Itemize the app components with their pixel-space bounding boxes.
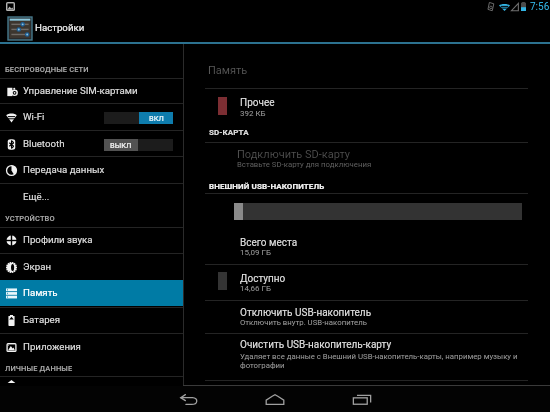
- button[interactable]: Прочее: [184, 90, 550, 117]
- button[interactable]: Память: [0, 280, 183, 306]
- staticText: Память: [208, 64, 248, 77]
- button[interactable]: Recent apps: [333, 386, 390, 412]
- staticText: 7:56: [530, 1, 550, 13]
- button[interactable]: Батарея: [0, 307, 183, 333]
- staticText: ВКЛ: [149, 114, 164, 123]
- staticText: Приложения: [23, 341, 81, 352]
- staticText: 14,66 ГБ: [240, 284, 272, 293]
- staticText: Очистить USB-накопитель-карту: [240, 339, 392, 351]
- staticText: Отключить USB-накопитель: [240, 307, 372, 319]
- staticText: Удаляет все данные с Внешний USB-накопит…: [240, 352, 530, 370]
- button[interactable]: Back: [160, 386, 217, 412]
- staticText: Прочее: [240, 97, 275, 109]
- staticText: 15,09 ГБ: [240, 248, 272, 257]
- staticText: Подключить SD-карту: [237, 148, 351, 161]
- staticText: Доступно: [240, 273, 286, 285]
- staticText: Ещё...: [23, 191, 50, 202]
- staticText: БЕСПРОВОДНЫЕ СЕТИ: [5, 65, 89, 74]
- staticText: Передача данных: [23, 164, 105, 175]
- button[interactable]: Всего места: [184, 230, 550, 258]
- staticText: Экран: [23, 261, 52, 272]
- staticText: Батарея: [23, 314, 61, 325]
- button[interactable]: Экран: [0, 254, 183, 280]
- button[interactable]: Wi-Fi: [0, 104, 183, 130]
- button[interactable]: Отключить USB-накопитель: [184, 302, 550, 332]
- staticText: Профили звука: [23, 234, 93, 245]
- staticText: Настройки: [35, 22, 85, 33]
- staticText: Bluetooth: [23, 138, 65, 149]
- button[interactable]: Ещё...: [0, 184, 183, 210]
- button[interactable]: Home: [246, 386, 303, 412]
- button[interactable]: Очистить USB-накопитель-карту: [184, 335, 550, 379]
- staticText: Всего места: [240, 237, 298, 249]
- staticText: УСТРОЙСТВО: [5, 214, 55, 223]
- button[interactable]: Профили звука: [0, 227, 183, 253]
- button[interactable]: Передача данных: [0, 157, 183, 183]
- staticText: ВНЕШНИЙ USB-НАКОПИТЕЛЬ: [209, 182, 325, 191]
- staticText: Вставьте SD-карту для подключения: [237, 160, 372, 169]
- button[interactable]: Доступно: [184, 266, 550, 296]
- button[interactable]: Управление SIM-картами: [0, 78, 183, 104]
- staticText: 392 КБ: [240, 109, 266, 118]
- staticText: Отключить внутр. USB-накопитель: [240, 318, 367, 327]
- button[interactable]: Приложения: [0, 334, 183, 360]
- staticText: SD-КАРТА: [209, 128, 249, 137]
- staticText: Wi-Fi: [23, 111, 45, 122]
- button[interactable]: Bluetooth: [0, 131, 183, 157]
- staticText: ВЫКЛ: [110, 141, 132, 150]
- staticText: Память: [23, 287, 58, 298]
- staticText: Управление SIM-картами: [23, 85, 138, 96]
- staticText: ЛИЧНЫЕ ДАННЫЕ: [5, 364, 73, 373]
